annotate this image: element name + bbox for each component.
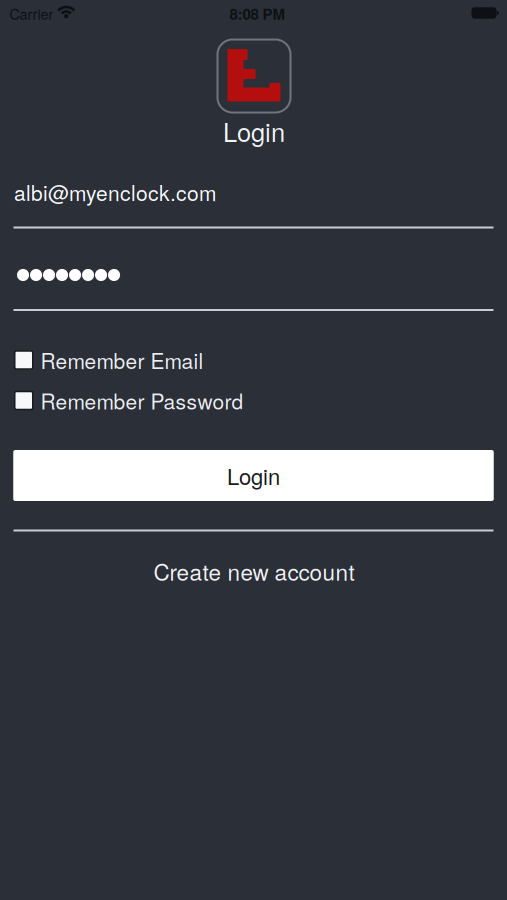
button[interactable]: Create new account <box>153 551 354 591</box>
staticText: Create new account <box>153 555 354 587</box>
staticText: Login <box>223 113 285 149</box>
staticText: Carrier <box>9 3 53 24</box>
staticText: 8:08 PM <box>229 3 284 24</box>
button[interactable]: Password <box>14 253 494 297</box>
staticText: albi@myenclock.com <box>14 177 216 207</box>
staticText: Remember Email <box>40 345 203 375</box>
staticText: Remember Password <box>40 385 243 416</box>
staticText: Login <box>227 460 280 491</box>
button[interactable]: Login <box>13 450 494 501</box>
button[interactable]: Remember Password <box>13 387 494 413</box>
button[interactable]: Remember Email <box>13 347 494 373</box>
button[interactable]: Email <box>14 170 494 214</box>
